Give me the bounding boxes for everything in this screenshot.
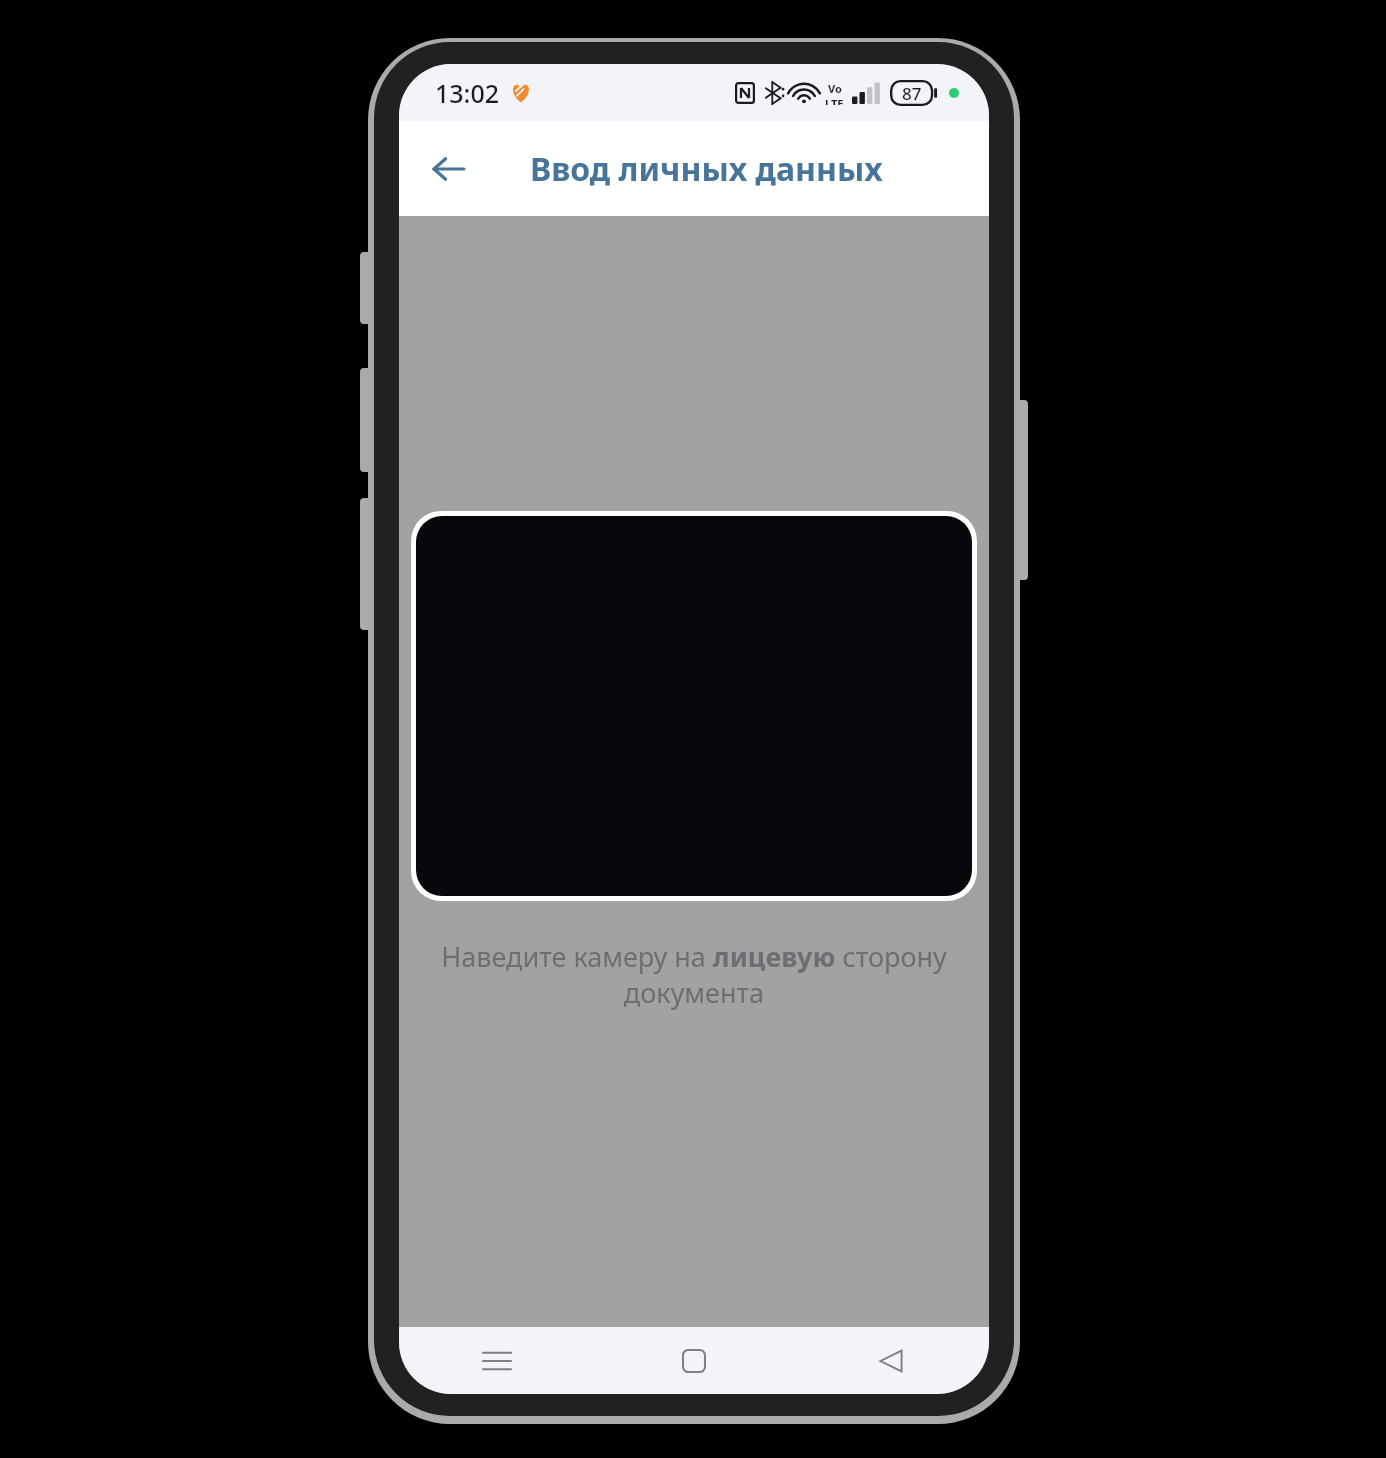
button[interactable]: Back bbox=[792, 1327, 989, 1394]
staticText: 13:02 bbox=[435, 76, 500, 110]
button[interactable]: Recents bbox=[399, 1327, 595, 1394]
staticText: Наведите камеру на лицевую сторону докум… bbox=[420, 938, 968, 1011]
button[interactable]: Home bbox=[595, 1327, 792, 1394]
staticText: Ввод личных данных bbox=[530, 147, 883, 191]
staticText: Vo bbox=[828, 81, 842, 96]
button[interactable]: Back bbox=[417, 137, 481, 201]
other: Camera preview bbox=[416, 516, 972, 896]
staticText: LTE bbox=[825, 96, 844, 105]
staticText: 87 bbox=[902, 82, 922, 105]
